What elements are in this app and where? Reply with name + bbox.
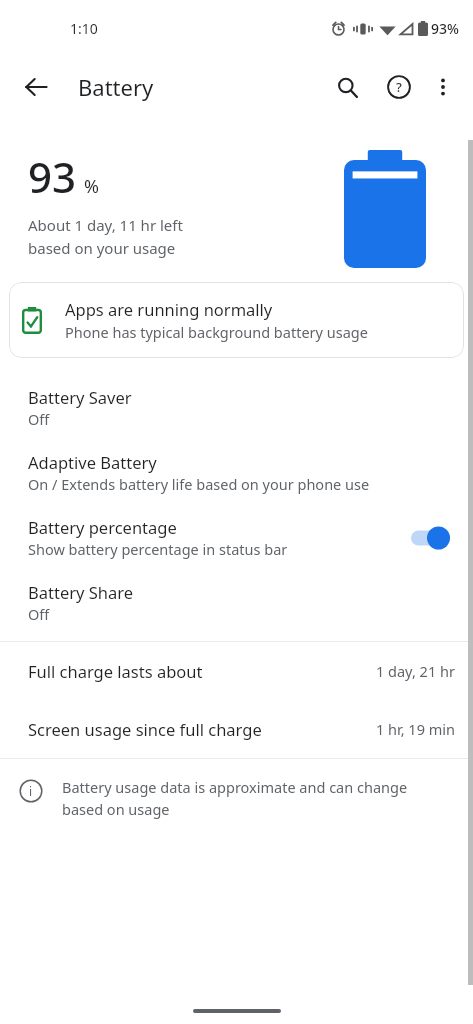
staticText: Off <box>28 409 50 429</box>
button[interactable]: Battery percentage toggle <box>407 521 455 555</box>
staticText: Battery Saver <box>28 386 132 408</box>
button[interactable]: Help <box>377 65 421 109</box>
staticText: 1 day, 21 hr <box>376 661 455 681</box>
button[interactable]: Battery Saver <box>0 375 473 440</box>
staticText: Screen usage since full charge <box>28 718 262 740</box>
staticText: Phone has typical background battery usa… <box>65 322 368 342</box>
staticText: Off <box>28 604 50 624</box>
button[interactable]: Battery percentage <box>0 505 473 570</box>
button[interactable]: Screen usage since full charge <box>0 700 473 758</box>
staticText: Battery percentage <box>28 516 177 538</box>
button[interactable]: Back <box>14 65 58 109</box>
staticText: Apps are running normally <box>65 298 273 320</box>
staticText: Full charge lasts about <box>28 660 203 682</box>
staticText: 1:10 <box>70 19 98 38</box>
button[interactable]: Full charge lasts about <box>0 642 473 700</box>
staticText: On / Extends battery life based on your … <box>28 474 370 494</box>
staticText: About 1 day, 11 hr left based on your us… <box>28 215 183 258</box>
staticText: ? <box>396 78 402 96</box>
button[interactable]: Search <box>325 65 369 109</box>
staticText: Adaptive Battery <box>28 451 157 473</box>
button[interactable]: Apps are running normally <box>9 282 464 358</box>
staticText: 1 hr, 19 min <box>376 719 455 739</box>
staticText: Battery Share <box>28 581 134 603</box>
staticText: Battery usage data is approximate and ca… <box>62 777 427 819</box>
staticText: Show battery percentage in status bar <box>28 539 288 559</box>
staticText: 93% <box>431 19 459 38</box>
button[interactable]: More options <box>423 67 463 107</box>
button[interactable]: Adaptive Battery <box>0 440 473 505</box>
staticText: % <box>84 174 99 199</box>
staticText: 93 <box>28 148 77 205</box>
staticText: i <box>29 783 33 799</box>
button[interactable]: Battery Share <box>0 570 473 635</box>
staticText: Battery <box>78 72 154 102</box>
